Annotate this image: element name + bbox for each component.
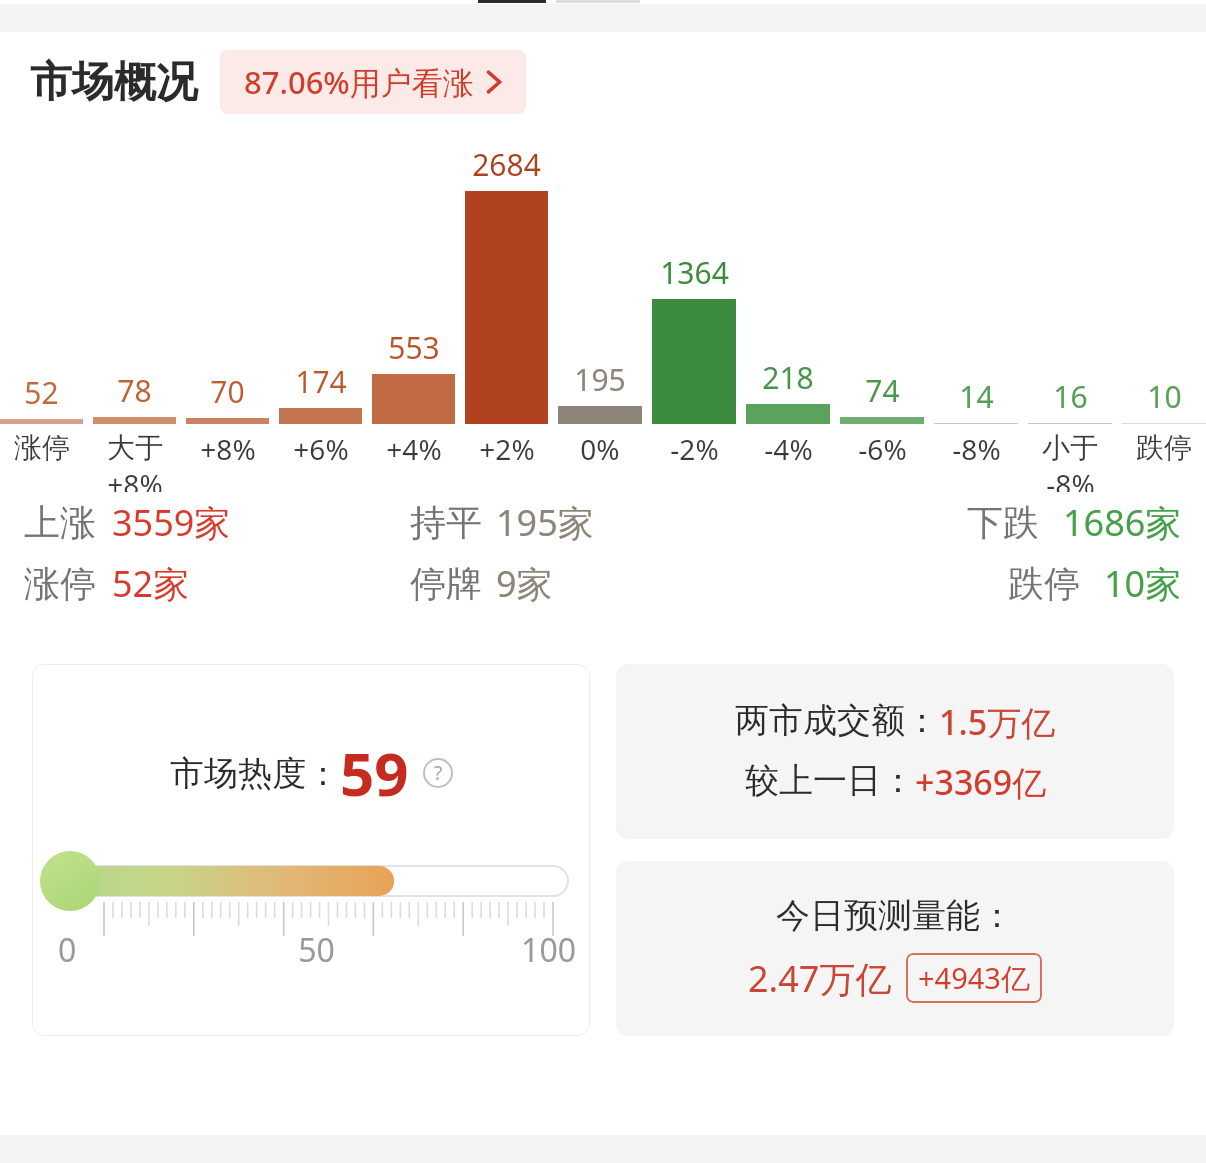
staticText: 10家: [1104, 559, 1182, 608]
staticText: 跌停: [1008, 561, 1080, 606]
staticText: 下跌: [967, 500, 1039, 545]
staticText: +3369亿: [915, 759, 1047, 805]
staticText: 100: [403, 928, 576, 972]
staticText: +8%: [200, 430, 256, 468]
staticText: 持平: [410, 500, 482, 545]
staticText: 52: [24, 372, 59, 413]
staticText: +8%: [107, 465, 163, 492]
staticText: -4%: [764, 430, 813, 468]
staticText: 1364: [660, 252, 729, 293]
staticText: 195: [574, 359, 626, 400]
staticText: 大于: [107, 430, 163, 465]
staticText: 50: [230, 928, 403, 972]
staticText: ?: [434, 760, 443, 786]
staticText: 涨停: [14, 430, 70, 465]
staticText: 78: [117, 370, 152, 411]
staticText: 市场热度：: [170, 752, 340, 795]
button[interactable]: 帮助: [423, 758, 453, 788]
staticText: 52家: [112, 559, 190, 608]
staticText: 1686家: [1063, 498, 1182, 547]
staticText: 1.5万亿: [939, 699, 1056, 745]
staticText: +6%: [293, 430, 349, 468]
button[interactable]: 市场热度：: [32, 664, 590, 1036]
staticText: 59: [340, 732, 409, 814]
staticText: -2%: [670, 430, 719, 468]
staticText: +2%: [479, 430, 535, 468]
staticText: 16: [1053, 376, 1088, 417]
staticText: 195家: [496, 498, 594, 547]
staticText: +4943亿: [918, 958, 1030, 998]
staticText: 218: [762, 357, 814, 398]
staticText: 9家: [496, 559, 553, 608]
staticText: -8%: [1046, 465, 1095, 492]
staticText: 0: [58, 928, 230, 972]
staticText: 10: [1147, 376, 1182, 417]
button[interactable]: 两市成交额：: [616, 664, 1174, 839]
staticText: 今日预测量能：: [776, 894, 1014, 937]
staticText: 停牌: [410, 561, 482, 606]
button[interactable]: 今日预测量能：: [616, 861, 1174, 1036]
staticText: 74: [865, 370, 900, 411]
button[interactable]: 87.06%用户看涨: [220, 50, 526, 114]
staticText: 87.06%用户看涨: [244, 61, 474, 103]
staticText: 小于: [1042, 430, 1098, 465]
staticText: 0%: [580, 430, 620, 468]
staticText: 14: [959, 376, 994, 417]
staticText: 上涨: [24, 500, 96, 545]
staticText: +4%: [386, 430, 442, 468]
staticText: 2.47万亿: [748, 954, 892, 1003]
staticText: 市场概况: [30, 56, 198, 109]
staticText: 较上一日：: [745, 759, 915, 802]
staticText: -6%: [858, 430, 907, 468]
staticText: 553: [388, 327, 440, 368]
staticText: 70: [210, 371, 245, 412]
staticText: -8%: [952, 430, 1001, 468]
staticText: 涨停: [24, 561, 96, 606]
staticText: 两市成交额：: [735, 699, 939, 742]
staticText: 174: [295, 361, 347, 402]
staticText: 3559家: [112, 498, 231, 547]
staticText: 跌停: [1136, 430, 1192, 465]
staticText: 2684: [472, 144, 541, 185]
